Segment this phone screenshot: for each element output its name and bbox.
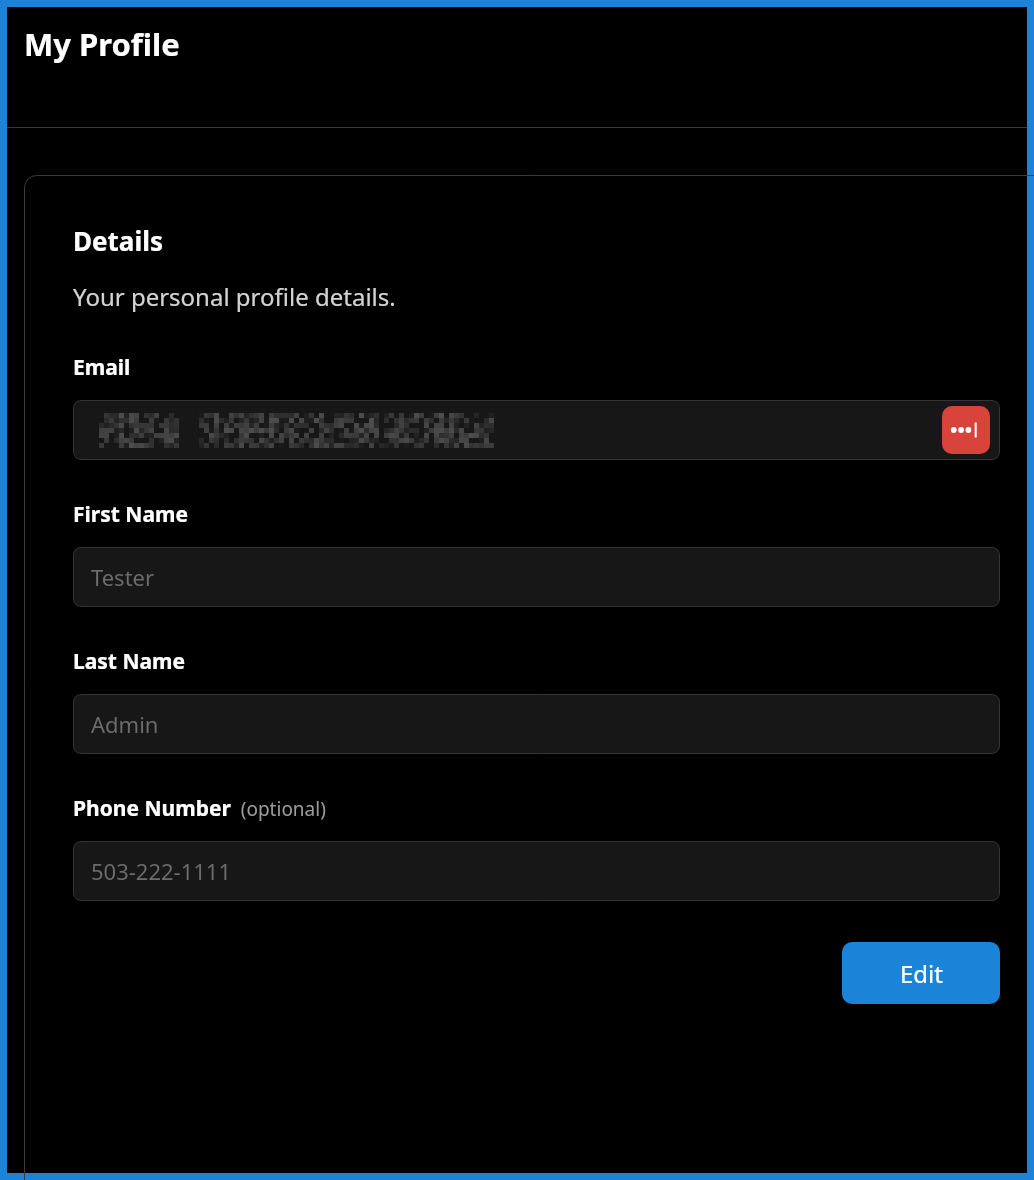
button[interactable]: Admin xyxy=(73,694,1000,754)
button[interactable]: Edit xyxy=(842,942,1000,1004)
staticText: Admin xyxy=(91,709,159,739)
staticText: Your personal profile details. xyxy=(73,280,396,313)
staticText: 503-222-1111 xyxy=(91,856,232,886)
staticText: My Profile xyxy=(24,23,180,65)
button[interactable]: Autofill password xyxy=(942,406,990,454)
staticText: Email xyxy=(73,353,131,382)
staticText: Edit xyxy=(900,957,943,990)
button[interactable]: 503-222-1111 xyxy=(73,841,1000,901)
button[interactable]: Autofill password xyxy=(73,400,1000,460)
staticText: Phone Number (optional) xyxy=(73,794,326,823)
staticText: First Name xyxy=(73,500,188,529)
staticText: Tester xyxy=(91,562,155,592)
staticText: Details xyxy=(73,223,163,258)
button[interactable]: Tester xyxy=(73,547,1000,607)
staticText: Last Name xyxy=(73,647,186,676)
